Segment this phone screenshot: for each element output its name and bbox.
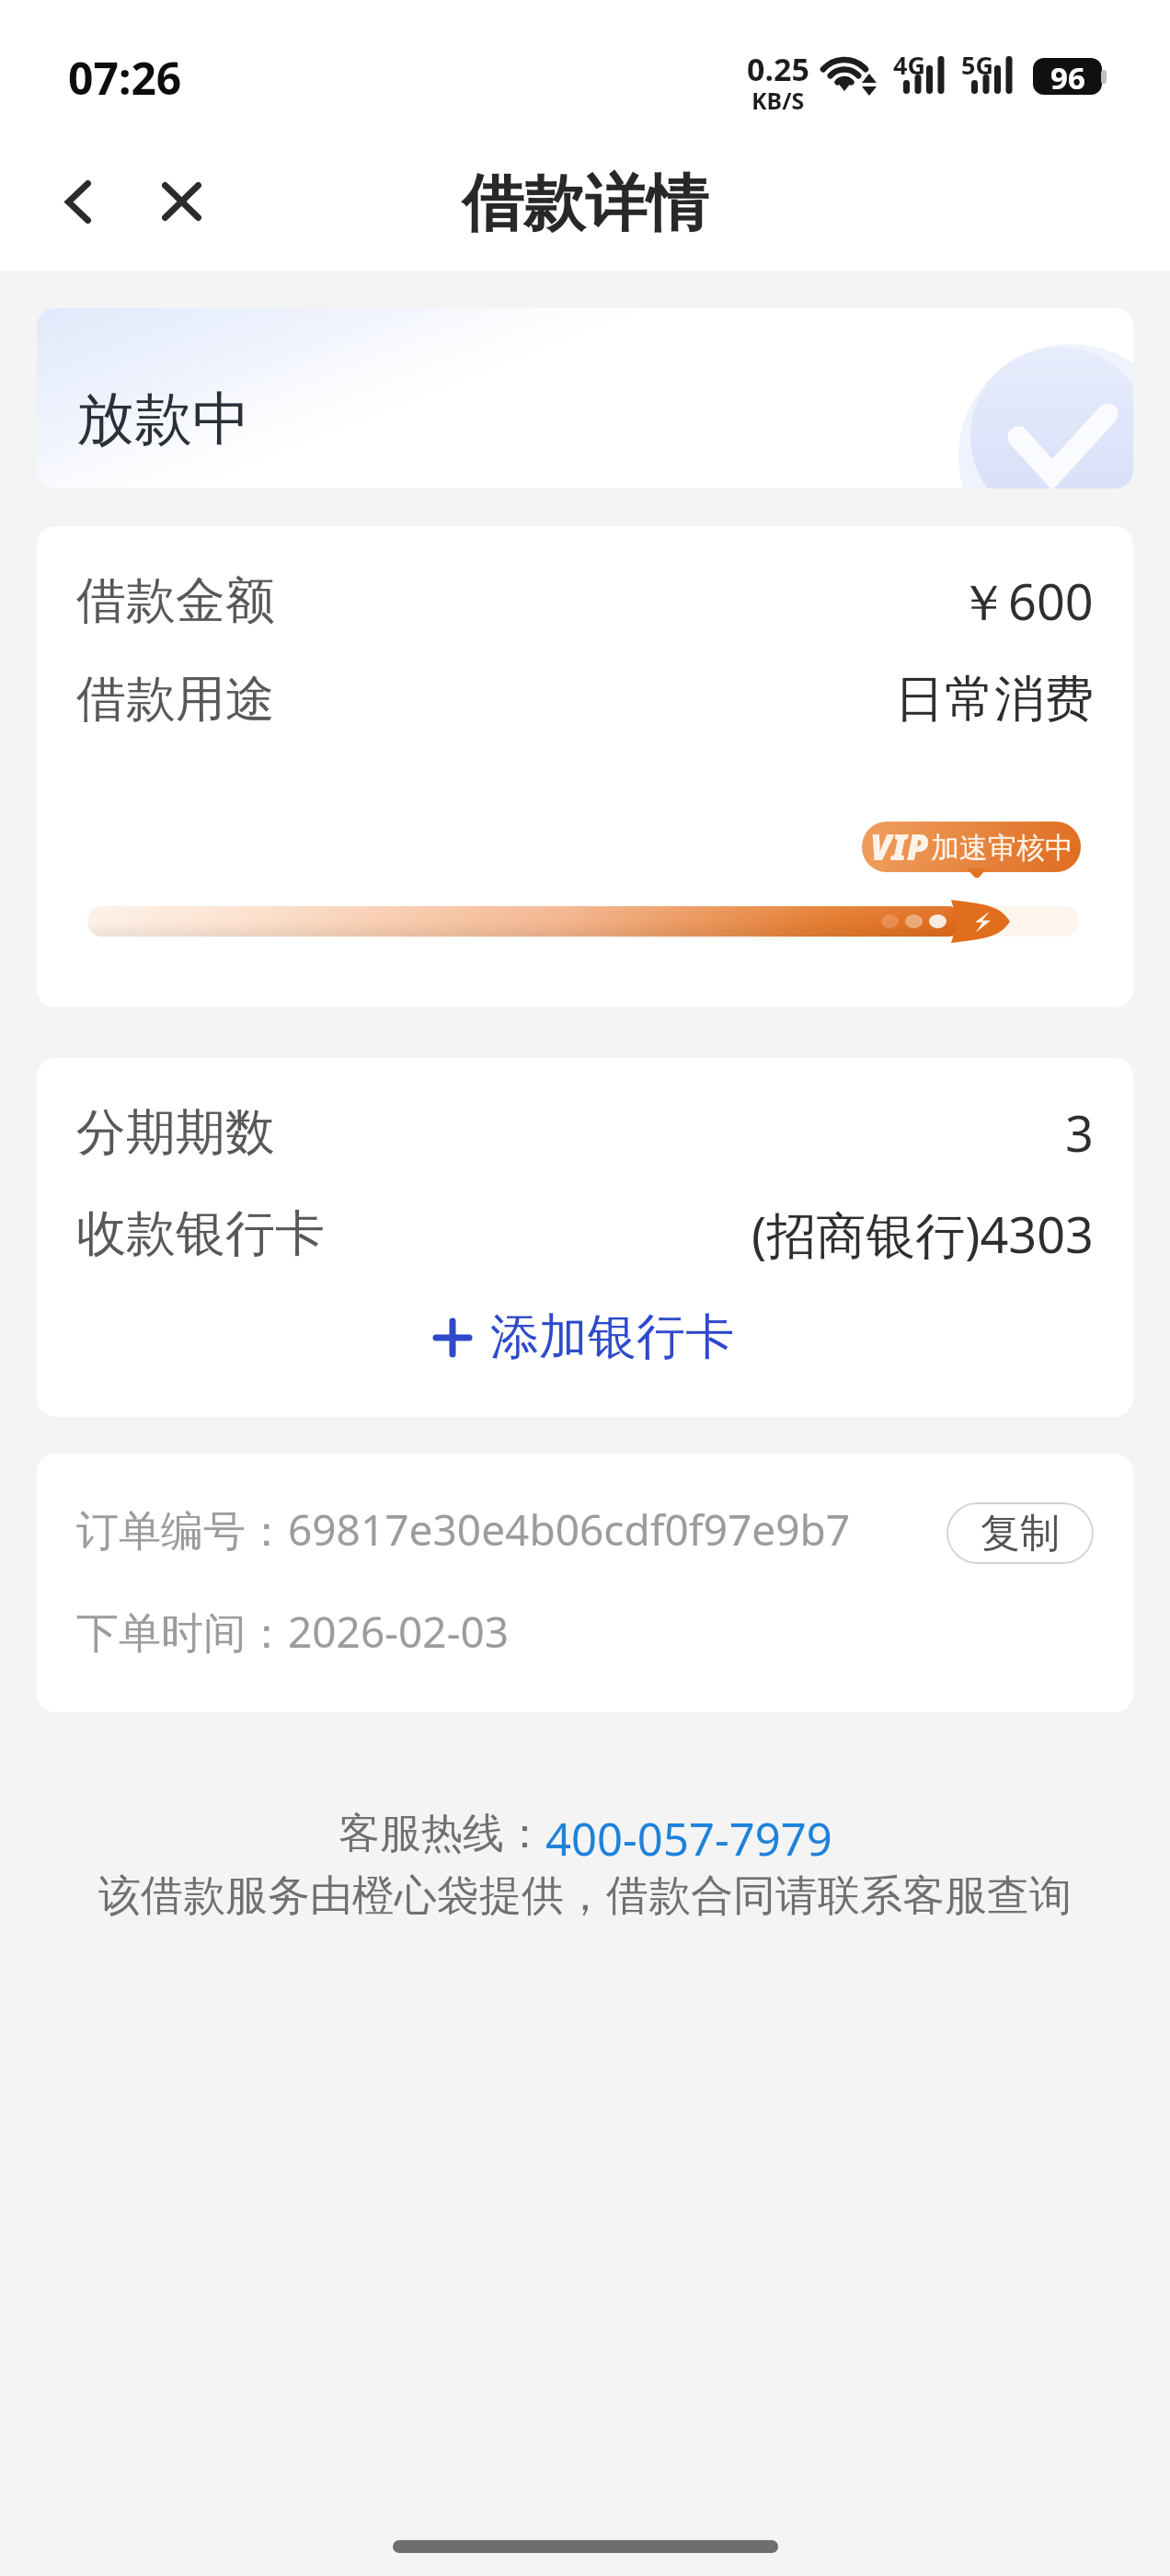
staticText: 借款金额 [76,569,275,632]
staticText: 4G [893,48,925,82]
staticText: 加速审核中 [931,830,1073,866]
staticText: 该借款服务由橙心袋提供，借款合同请联系客服查询 [0,1869,1170,1923]
button[interactable]: 添加银行卡 [425,1301,745,1374]
staticText: ￥600 [958,567,1094,635]
staticText: 借款用途 [76,668,275,730]
staticText: 复制 [981,1509,1060,1558]
button[interactable]: 复制 [946,1502,1094,1564]
staticText: VIP [870,822,929,870]
staticText: KB/S [751,85,805,116]
button[interactable]: 400-057-7979 [545,1808,832,1869]
staticText: 5G [961,48,993,82]
staticText: 放款中 [76,383,250,455]
staticText: 收款银行卡 [76,1202,325,1265]
button[interactable]: Back [38,161,119,242]
staticText: 下单时间：2026-02-03 [76,1603,510,1661]
staticText: 借款详情 [462,165,708,242]
staticText: 分期期数 [76,1101,275,1164]
staticText: 日常消费 [895,668,1094,730]
staticText: 96 [1050,58,1085,94]
staticText: 客服热线： [338,1808,545,1860]
staticText: 3 [1065,1098,1094,1167]
staticText: 0.25 [747,48,809,90]
staticText: 07:26 [68,48,182,108]
staticText: (招商银行)4303 [751,1200,1094,1268]
staticText: 添加银行卡 [490,1306,734,1368]
button[interactable]: Close [141,161,222,242]
staticText: 订单编号：69817e30e4b06cdf0f97e9b7 [76,1501,851,1558]
